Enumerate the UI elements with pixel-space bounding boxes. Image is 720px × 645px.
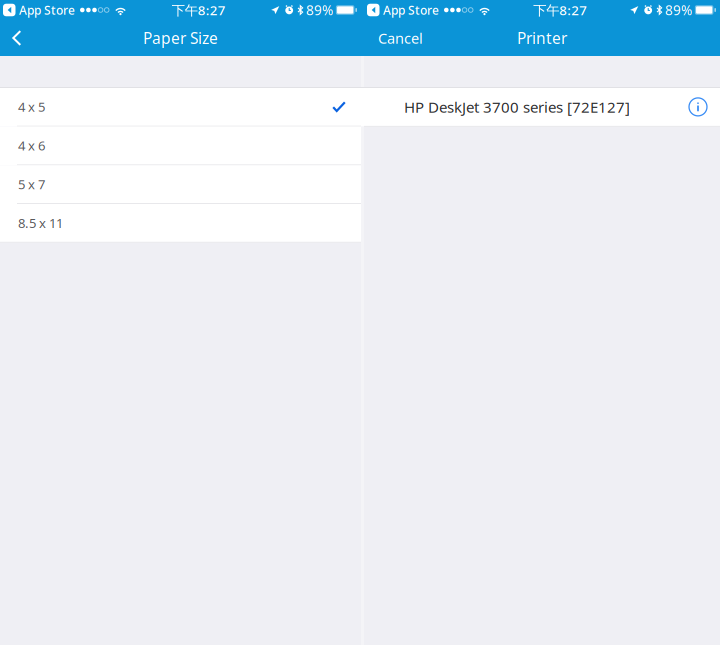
button[interactable]: HP DeskJet 3700 series [72E127] [364, 88, 720, 127]
button[interactable]: Back to App Store [3, 2, 75, 18]
staticText: App Store [383, 2, 439, 18]
staticText: Paper Size [143, 27, 218, 49]
button[interactable]: 5 x 7 [0, 165, 361, 204]
staticText: Printer [517, 27, 567, 49]
staticText: Cancel [378, 28, 423, 48]
button[interactable]: 8.5 x 11 [0, 204, 361, 243]
staticText: App Store [19, 2, 75, 18]
staticText: 5 x 7 [18, 175, 45, 193]
staticText: 下午8:27 [533, 1, 587, 19]
button[interactable]: 4 x 6 [0, 127, 361, 165]
staticText: 8.5 x 11 [18, 214, 63, 232]
staticText: 89% [306, 1, 333, 19]
staticText: 下午8:27 [172, 1, 226, 19]
button[interactable]: 4 x 5 [0, 88, 361, 127]
button[interactable]: Back [0, 20, 35, 56]
staticText: HP DeskJet 3700 series [72E127] [404, 97, 630, 117]
button[interactable]: Back to App Store [367, 2, 439, 18]
button[interactable]: Printer info [688, 97, 708, 117]
staticText: 89% [665, 1, 692, 19]
button[interactable]: Cancel [364, 20, 435, 56]
staticText: 4 x 6 [18, 137, 45, 154]
staticText: 4 x 5 [18, 98, 45, 116]
